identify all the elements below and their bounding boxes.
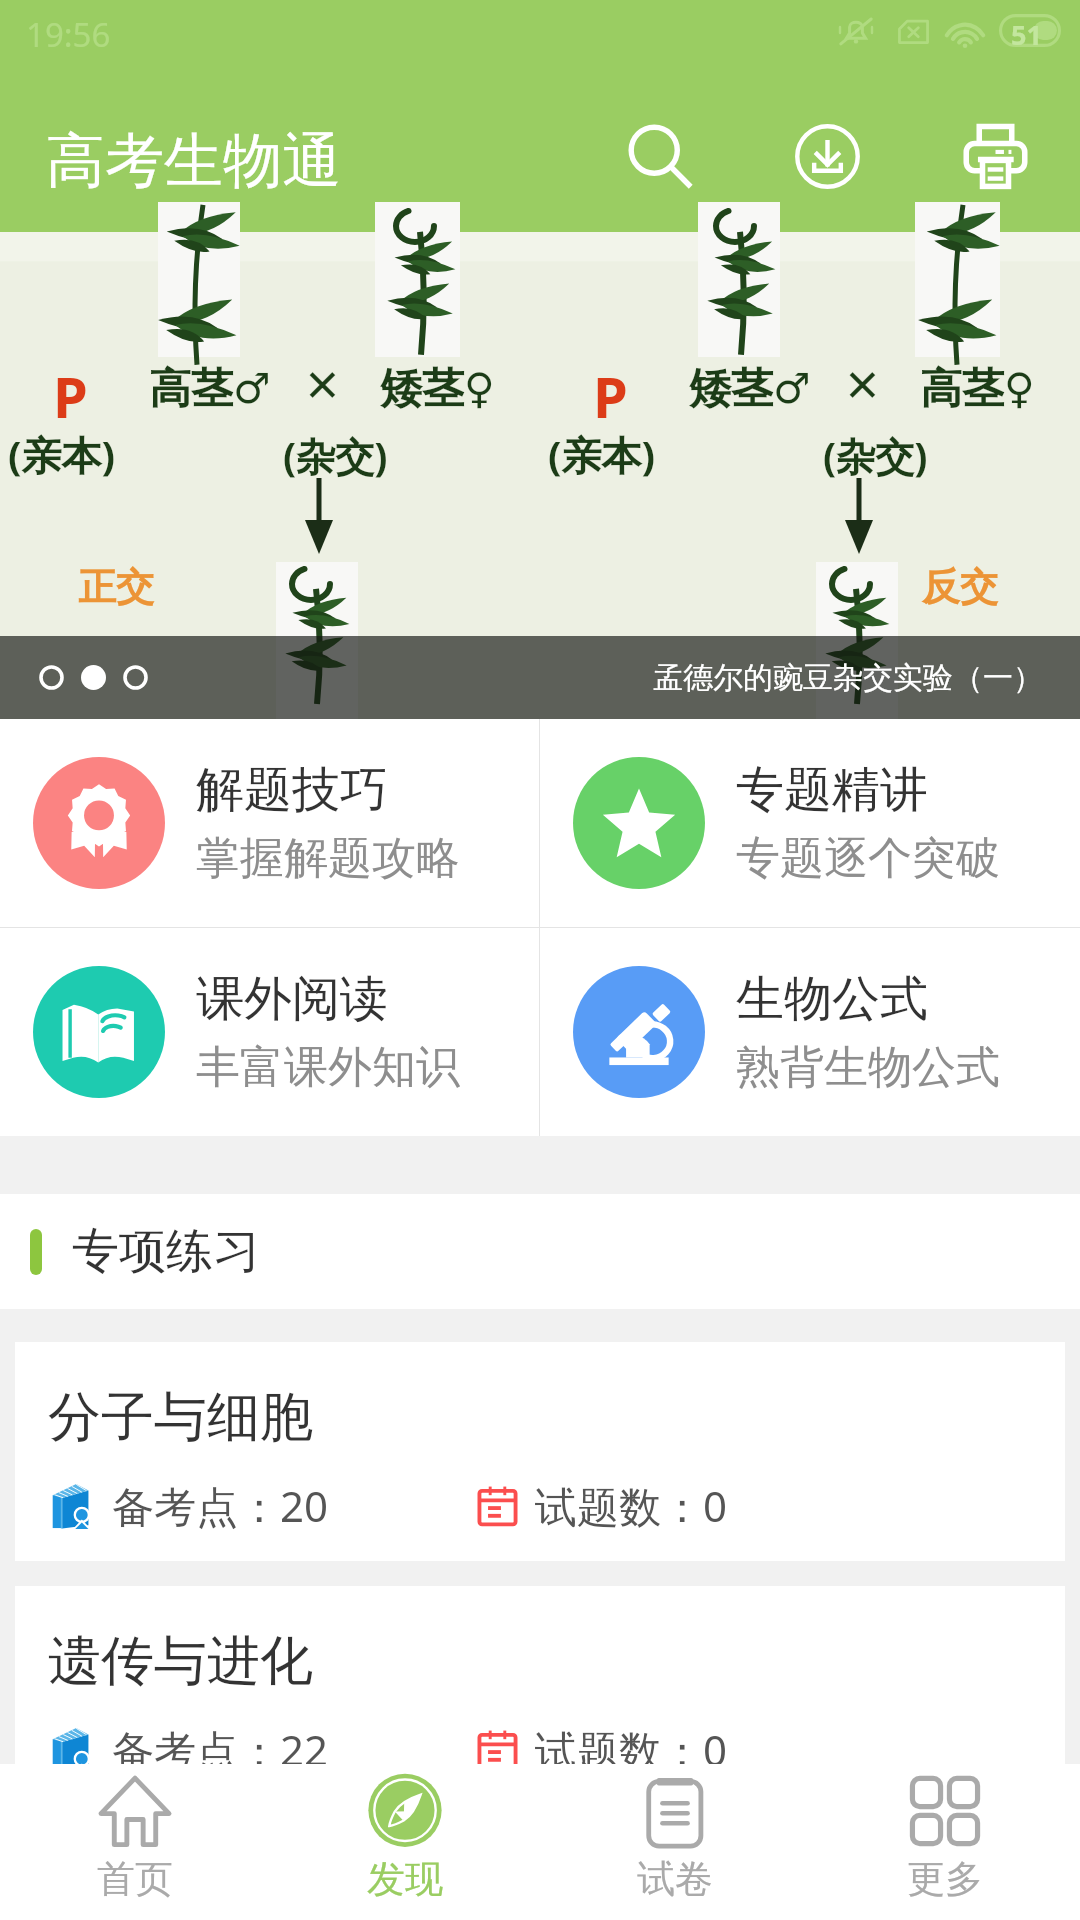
staticText: 首页	[97, 1855, 173, 1903]
staticText: 高茎♀	[920, 363, 1035, 416]
button[interactable]: Print	[933, 94, 1057, 218]
staticText: 矮茎♂	[689, 363, 811, 416]
staticText: 遗传与进化	[48, 1628, 313, 1695]
button[interactable]: 试卷	[540, 1764, 810, 1911]
staticText: 熟背生物公式	[736, 1040, 1000, 1095]
staticText: 解题技巧	[196, 760, 388, 820]
staticText: 专项练习	[72, 1222, 260, 1281]
button[interactable]: 课外阅读	[0, 928, 539, 1136]
staticText: 丰富课外知识	[196, 1040, 460, 1095]
staticText: ✕	[844, 360, 881, 411]
staticText: 19:56	[26, 12, 111, 57]
staticText: 课外阅读	[196, 969, 388, 1029]
staticText: 孟德尔的豌豆杂交实验（一）	[653, 659, 1043, 697]
staticText: 矮茎♀	[380, 363, 495, 416]
staticText: 生物公式	[736, 969, 928, 1029]
staticText: 高茎♂	[149, 363, 271, 416]
staticText: 试题数：0	[535, 1721, 728, 1778]
staticText: 高考生物通	[46, 124, 341, 198]
staticText: 备考点：20	[112, 1477, 329, 1534]
staticText: P	[593, 358, 628, 434]
button[interactable]: Search	[598, 94, 722, 218]
staticText: (亲本)	[548, 427, 656, 482]
staticText: 掌握解题攻略	[196, 831, 460, 886]
staticText: 备考点：22	[112, 1721, 329, 1778]
staticText: 更多	[907, 1855, 983, 1903]
button[interactable]: 发现	[270, 1764, 540, 1911]
button[interactable]: 遗传与进化	[15, 1586, 1065, 1805]
staticText: 发现	[367, 1855, 443, 1903]
button[interactable]: 解题技巧	[0, 719, 539, 927]
staticText: 专题精讲	[736, 760, 928, 820]
staticText: 试卷	[637, 1855, 713, 1903]
staticText: 正交	[78, 563, 154, 611]
staticText: (杂交)	[823, 429, 928, 482]
staticText: 试题数：0	[535, 1477, 728, 1534]
button[interactable]: 分子与细胞	[15, 1342, 1065, 1561]
staticText: 专题逐个突破	[736, 831, 1000, 886]
staticText: (亲本)	[8, 427, 116, 482]
staticText: ✕	[304, 360, 341, 411]
button[interactable]: P	[0, 232, 1080, 719]
staticText: 反交	[922, 563, 998, 611]
staticText: 分子与细胞	[48, 1384, 313, 1451]
button[interactable]: 专题精讲	[540, 719, 1080, 927]
staticText: 51	[1011, 16, 1042, 53]
button[interactable]: 更多	[810, 1764, 1080, 1911]
button[interactable]: 生物公式	[540, 928, 1080, 1136]
button[interactable]: Download	[765, 94, 889, 218]
staticText: (杂交)	[283, 429, 388, 482]
staticText: P	[53, 358, 88, 434]
button[interactable]: 首页	[0, 1764, 270, 1911]
